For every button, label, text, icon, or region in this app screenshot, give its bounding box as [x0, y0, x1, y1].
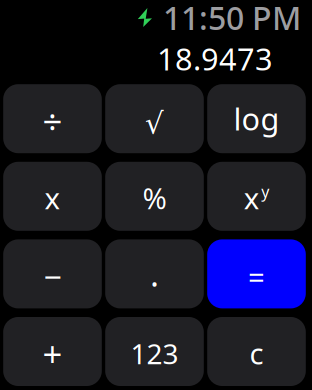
staticText: 11:50 PM: [163, 0, 301, 39]
button[interactable]: Clear: [207, 317, 306, 386]
staticText: +: [42, 330, 62, 376]
staticText: log: [233, 98, 279, 139]
staticText: =: [248, 257, 265, 296]
staticText: x: [244, 178, 260, 217]
button[interactable]: Multiply: [3, 162, 102, 231]
button[interactable]: Equals: [207, 239, 306, 308]
button[interactable]: Divide: [3, 84, 102, 153]
button[interactable]: Plus: [3, 317, 102, 386]
button[interactable]: Percent: [105, 162, 204, 231]
button[interactable]: Decimal point: [105, 239, 204, 308]
button[interactable]: Numbers: [105, 317, 204, 386]
staticText: 123: [130, 335, 178, 372]
staticText: %: [142, 178, 166, 217]
staticText: √: [145, 107, 164, 140]
button[interactable]: Square root: [105, 84, 204, 153]
staticText: −: [43, 255, 61, 298]
staticText: •: [151, 271, 158, 296]
staticText: c: [249, 333, 263, 372]
button[interactable]: Minus: [3, 239, 102, 308]
staticText: y: [261, 181, 269, 202]
button[interactable]: Logarithm: [207, 84, 306, 153]
staticText: 18.9473: [157, 38, 273, 79]
button[interactable]: Power: [207, 162, 306, 231]
staticText: x: [44, 178, 60, 217]
staticText: ÷: [42, 98, 62, 144]
